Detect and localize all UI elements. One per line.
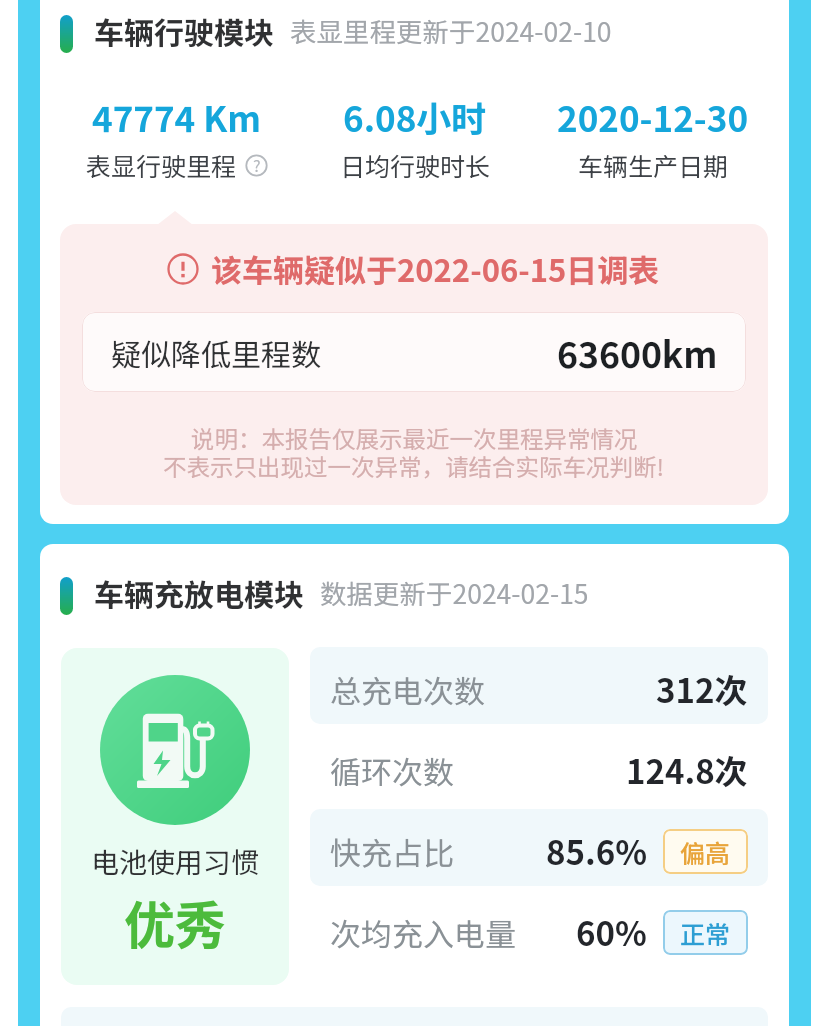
staticText: 不表示只出现过一次异常，请结合实际车况判断! xyxy=(163,449,665,483)
staticText: 日均行驶时长 xyxy=(340,147,491,183)
staticText: 次均充入电量 xyxy=(330,910,516,955)
staticText: 总充电次数 xyxy=(330,667,485,712)
staticText: 47774 Km xyxy=(92,91,261,142)
staticText: 85.6% xyxy=(546,827,647,875)
staticText: 312次 xyxy=(656,665,748,713)
button[interactable]: 疑似降低里程数 xyxy=(82,312,746,392)
staticText: 优秀 xyxy=(124,885,227,959)
button[interactable]: 47774 Km xyxy=(57,91,296,181)
staticText: 车辆行驶模块 xyxy=(94,9,274,52)
staticText: ? xyxy=(253,153,261,176)
button[interactable]: 表显行驶里程说明 xyxy=(245,154,268,177)
staticText: 63600km xyxy=(557,327,718,378)
staticText: 6.08小时 xyxy=(343,91,487,142)
staticText: 车辆充放电模块 xyxy=(94,571,304,614)
staticText: 循环次数 xyxy=(330,748,454,793)
staticText: 说明：本报告仅展示最近一次里程异常情况 xyxy=(191,421,638,455)
staticText: 表显行驶里程 xyxy=(86,147,237,183)
staticText: 电池使用习惯 xyxy=(91,841,260,882)
staticText: 正常 xyxy=(680,915,731,951)
staticText: 2020-12-30 xyxy=(557,91,749,142)
staticText: 偏高 xyxy=(680,834,731,870)
button[interactable]: 6.08小时 xyxy=(296,91,534,181)
button[interactable]: 快充占比 xyxy=(310,810,768,891)
staticText: 数据更新于2024-02-15 xyxy=(320,573,589,611)
staticText: 该车辆疑似于2022-06-15日调表 xyxy=(211,246,660,291)
staticText: 疑似降低里程数 xyxy=(111,331,321,374)
button[interactable]: 车辆行驶模块 xyxy=(40,2,789,58)
button[interactable]: 次均充入电量 xyxy=(310,891,768,972)
button[interactable]: 2020-12-30 xyxy=(534,91,772,181)
staticText: 车辆生产日期 xyxy=(578,147,729,183)
staticText: 表显里程更新于2024-02-10 xyxy=(290,11,612,49)
button[interactable]: 电池使用习惯 xyxy=(61,648,289,985)
staticText: 60% xyxy=(576,908,647,956)
button[interactable]: 循环次数 xyxy=(310,729,768,810)
button[interactable]: 总充电次数 xyxy=(310,648,768,729)
staticText: 快充占比 xyxy=(330,829,454,874)
button[interactable]: 车辆充放电模块 xyxy=(40,564,789,620)
staticText: 124.8次 xyxy=(626,746,748,794)
